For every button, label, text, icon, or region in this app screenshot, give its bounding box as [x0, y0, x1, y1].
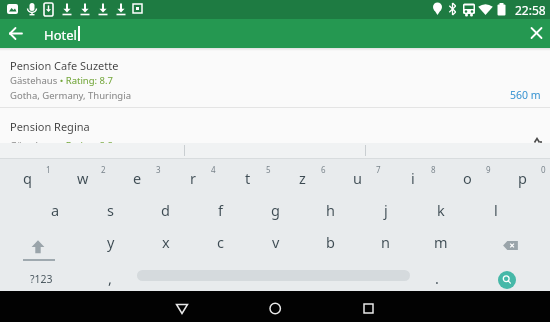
- staticText: .: [435, 268, 439, 288]
- staticText: s: [107, 200, 114, 220]
- staticText: z: [299, 168, 306, 188]
- button[interactable]: d: [138, 196, 193, 224]
- staticText: w: [77, 168, 89, 188]
- button[interactable]: h: [303, 196, 358, 224]
- staticText: 4: [211, 164, 216, 174]
- staticText: 0: [541, 164, 546, 174]
- button[interactable]: y: [83, 228, 138, 256]
- button[interactable]: [498, 271, 516, 289]
- staticText: Gästehaus • Rating: 8.7: [10, 74, 113, 87]
- staticText: t: [245, 168, 251, 188]
- staticText: d: [161, 200, 170, 220]
- staticText: b: [326, 232, 335, 252]
- staticText: h: [326, 200, 335, 220]
- staticText: 1: [46, 164, 51, 174]
- staticText: Gästehaus • Rating: 8.8: [10, 139, 113, 152]
- button[interactable]: m: [413, 228, 468, 256]
- button[interactable]: k: [413, 196, 468, 224]
- staticText: g: [271, 200, 280, 220]
- staticText: 5: [266, 164, 271, 174]
- button[interactable]: a: [28, 196, 83, 224]
- staticText: i: [411, 168, 415, 188]
- button[interactable]: f: [193, 196, 248, 224]
- button[interactable]: i: [385, 164, 440, 192]
- button[interactable]: [354, 292, 382, 320]
- button[interactable]: e: [110, 164, 165, 192]
- staticText: m: [434, 232, 448, 252]
- staticText: f: [218, 200, 223, 220]
- staticText: o: [463, 168, 472, 188]
- staticText: Hotel: [44, 26, 77, 44]
- button[interactable]: p: [495, 164, 550, 192]
- staticText: e: [133, 168, 142, 188]
- button[interactable]: ,: [95, 264, 125, 292]
- button[interactable]: s: [83, 196, 138, 224]
- staticText: q: [23, 168, 32, 188]
- staticText: 22:58: [515, 2, 546, 18]
- staticText: n: [381, 232, 390, 252]
- staticText: 6: [321, 164, 326, 174]
- staticText: k: [437, 200, 445, 220]
- button[interactable]: [524, 21, 548, 45]
- button[interactable]: g: [248, 196, 303, 224]
- staticText: Gotha, Germany, Thuringia: [10, 89, 131, 102]
- staticText: 3: [156, 164, 161, 174]
- staticText: y: [107, 232, 115, 252]
- staticText: v: [272, 232, 280, 252]
- button[interactable]: Pension Cafe Suzette: [0, 48, 550, 107]
- staticText: 560 m: [510, 88, 541, 102]
- staticText: l: [494, 200, 498, 220]
- button[interactable]: [168, 292, 196, 320]
- staticText: Pension Cafe Suzette: [10, 58, 119, 73]
- button[interactable]: q: [0, 164, 55, 192]
- button[interactable]: n: [358, 228, 413, 256]
- button[interactable]: b: [303, 228, 358, 256]
- button[interactable]: x: [138, 228, 193, 256]
- button[interactable]: .: [422, 264, 452, 292]
- button[interactable]: v: [248, 228, 303, 256]
- staticText: ?123: [30, 272, 53, 286]
- button[interactable]: o: [440, 164, 495, 192]
- staticText: p: [518, 168, 527, 188]
- button[interactable]: z: [275, 164, 330, 192]
- staticText: x: [162, 232, 170, 252]
- staticText: a: [51, 200, 60, 220]
- staticText: 2: [101, 164, 106, 174]
- staticText: ,: [108, 268, 112, 288]
- staticText: 8: [431, 164, 436, 174]
- button[interactable]: j: [358, 196, 413, 224]
- button[interactable]: c: [193, 228, 248, 256]
- staticText: 7: [376, 164, 381, 174]
- staticText: j: [384, 200, 388, 220]
- button[interactable]: t: [220, 164, 275, 192]
- button[interactable]: u: [330, 164, 385, 192]
- staticText: u: [353, 168, 362, 188]
- staticText: r: [190, 168, 196, 188]
- button[interactable]: [483, 230, 538, 258]
- button[interactable]: [4, 21, 28, 45]
- button[interactable]: [261, 292, 289, 320]
- staticText: c: [217, 232, 224, 252]
- staticText: 9: [486, 164, 491, 174]
- button[interactable]: ?123: [21, 265, 61, 293]
- button[interactable]: r: [165, 164, 220, 192]
- button[interactable]: w: [55, 164, 110, 192]
- button[interactable]: Pension Regina: [0, 108, 550, 143]
- staticText: Pension Regina: [10, 119, 90, 134]
- button[interactable]: [10, 230, 66, 258]
- button[interactable]: l: [468, 196, 523, 224]
